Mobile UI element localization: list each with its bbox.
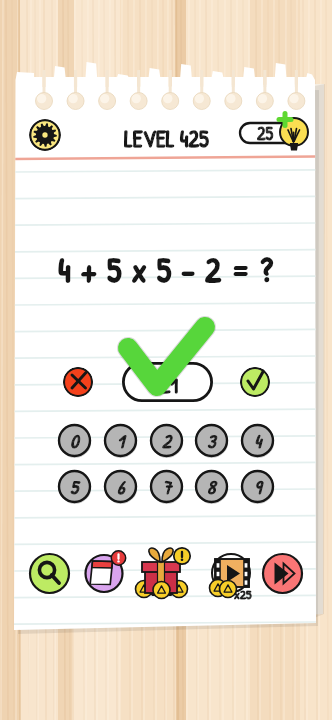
staticText: 6 (117, 474, 125, 500)
button[interactable]: Search (26, 550, 73, 597)
button[interactable]: 4 (240, 423, 275, 458)
staticText: 0 (70, 428, 79, 454)
staticText: 4 + 5 x 5 - 2 = ? (58, 247, 274, 293)
staticText: x25 (234, 585, 252, 603)
button[interactable]: Watch ad for coins (205, 548, 257, 600)
staticText: 21 (160, 370, 179, 400)
staticText: 4 + 5 x 5 - 2 = ? (58, 247, 274, 293)
staticText: 25 (257, 121, 274, 143)
staticText: 9 (254, 474, 261, 500)
staticText: LEVEL 425 (124, 123, 209, 149)
button[interactable]: Submit (240, 367, 270, 397)
button[interactable]: Free gift (137, 548, 189, 600)
staticText: 3 (207, 428, 216, 454)
staticText: 4 (254, 428, 262, 454)
staticText: 2 (162, 428, 171, 454)
staticText: 7 (162, 474, 172, 500)
staticText: 5 (70, 474, 79, 500)
staticText: 1 (117, 428, 124, 454)
button[interactable]: Settings (29, 119, 61, 151)
button[interactable]: 6 (103, 469, 138, 504)
button[interactable]: 0 (57, 423, 92, 458)
staticText: 5 (70, 474, 79, 500)
button[interactable]: 7 (149, 469, 184, 504)
button[interactable]: 25 (238, 115, 316, 151)
staticText: 8 (207, 474, 216, 500)
button[interactable]: 1 (103, 423, 138, 458)
button[interactable]: 3 (194, 423, 229, 458)
button[interactable]: Daily reward (81, 550, 128, 597)
button[interactable]: 8 (194, 469, 229, 504)
staticText: 6 (117, 474, 125, 500)
staticText: 7 (162, 474, 172, 500)
staticText: LEVEL 425 (124, 123, 209, 149)
button[interactable]: 9 (240, 469, 275, 504)
staticText: 9 (254, 474, 261, 500)
staticText: 4 (254, 428, 262, 454)
staticText: 8 (207, 474, 216, 500)
staticText: 2 (162, 428, 171, 454)
button[interactable]: 5 (57, 469, 92, 504)
staticText: 1 (117, 428, 124, 454)
staticText: 25 (257, 121, 274, 143)
button[interactable]: Clear (63, 367, 93, 397)
staticText: 3 (207, 428, 216, 454)
button[interactable]: 21 (122, 362, 213, 402)
staticText: 0 (70, 428, 79, 454)
button[interactable]: Play (259, 550, 306, 597)
button[interactable]: 2 (149, 423, 184, 458)
staticText: x25 (234, 585, 252, 603)
staticText: 21 (160, 370, 179, 400)
